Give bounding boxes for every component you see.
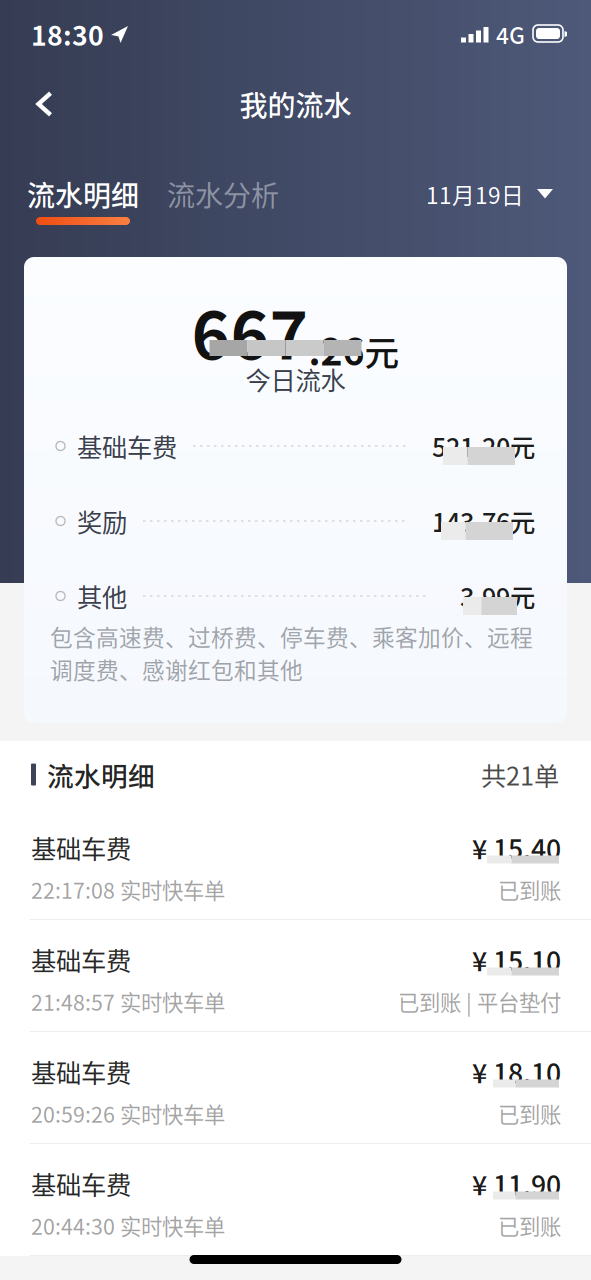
staticText: 667: [191, 284, 308, 378]
staticText: 3.99元: [460, 578, 535, 614]
staticText: 18:30: [31, 15, 104, 53]
staticText: 基础车费: [31, 1053, 131, 1090]
staticText: 流水明细: [47, 755, 155, 794]
staticText: 已到账: [498, 874, 561, 905]
button[interactable]: 流水明细: [0, 179, 151, 225]
staticText: 已到账 | 平台垫付: [398, 986, 561, 1017]
staticText: 已到账: [498, 1210, 561, 1241]
staticText: 流水分析: [167, 174, 279, 214]
staticText: 20:44:30 实时快车单: [31, 1210, 225, 1241]
staticText: .26: [308, 322, 364, 376]
staticText: 11月19日: [426, 178, 524, 210]
button[interactable]: 基础车费: [0, 920, 591, 1031]
staticText: 基础车费: [31, 829, 131, 866]
staticText: 20:59:26 实时快车单: [31, 1098, 225, 1129]
staticText: 今日流水: [245, 361, 345, 397]
staticText: 流水明细: [27, 174, 139, 214]
staticText: 22:17:08 实时快车单: [31, 874, 225, 905]
staticText: ¥ 11.90: [472, 1164, 561, 1203]
staticText: 奖励: [77, 503, 127, 539]
staticText: 基础车费: [31, 1165, 131, 1202]
button[interactable]: Back: [0, 68, 78, 140]
staticText: ¥ 18.10: [472, 1052, 561, 1091]
button[interactable]: 基础车费: [0, 1144, 591, 1255]
button[interactable]: 基础车费: [0, 1032, 591, 1143]
staticText: 基础车费: [31, 941, 131, 978]
button[interactable]: 11月19日: [426, 179, 591, 209]
staticText: ¥ 15.40: [472, 828, 561, 867]
staticText: ¥ 15.10: [472, 940, 561, 979]
staticText: 21:48:57 实时快车单: [31, 986, 225, 1017]
staticText: 包含高速费、过桥费、停车费、乘客加价、远程调度费、感谢红包和其他: [50, 620, 533, 686]
staticText: 已到账: [498, 1098, 561, 1129]
staticText: 521.20元: [432, 428, 535, 464]
staticText: 共21单: [481, 756, 559, 793]
button[interactable]: 流水分析: [151, 179, 299, 209]
staticText: 4G: [496, 18, 525, 50]
staticText: 我的流水: [239, 84, 351, 124]
staticText: 143.76元: [432, 503, 535, 539]
button[interactable]: 基础车费: [0, 808, 591, 919]
staticText: 其他: [77, 578, 127, 614]
staticText: 基础车费: [77, 428, 177, 464]
staticText: 元: [364, 326, 399, 376]
